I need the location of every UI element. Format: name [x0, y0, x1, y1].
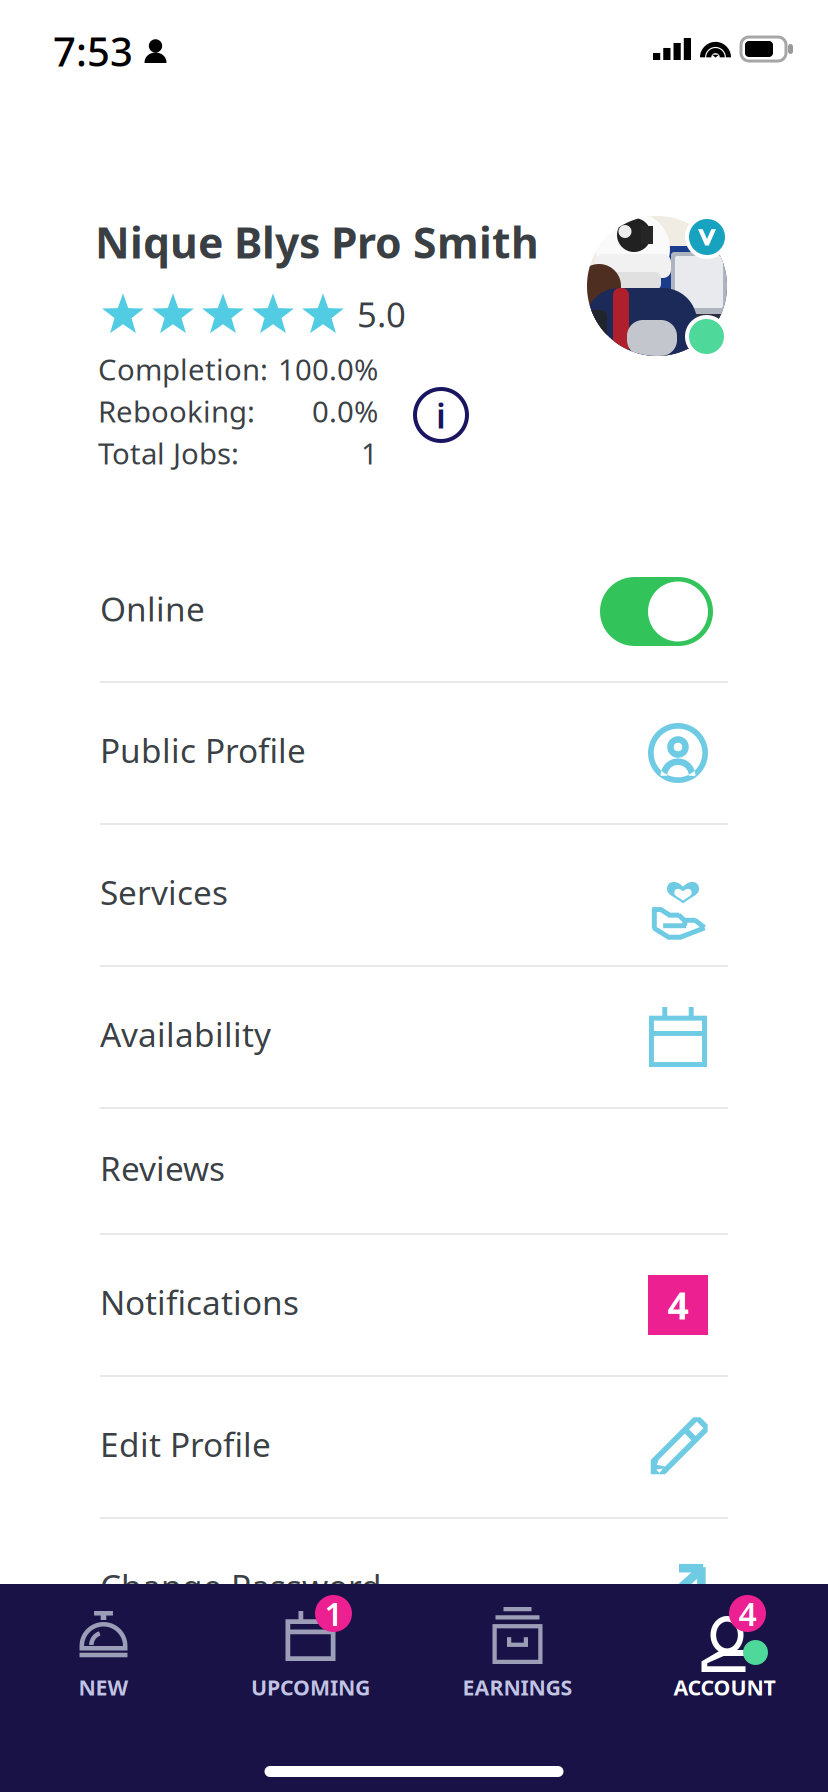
button[interactable]: NEW	[0, 1584, 207, 1714]
button[interactable]: Reviews	[100, 1109, 728, 1233]
staticText: NEW	[78, 1673, 128, 1701]
staticText: 0.0%	[312, 391, 378, 430]
button[interactable]: Public Profile	[100, 683, 728, 823]
staticText: Completion:	[98, 349, 268, 388]
staticText: EARNINGS	[462, 1673, 572, 1701]
staticText: 7:53	[53, 24, 133, 77]
staticText: 1	[361, 433, 378, 472]
button[interactable]: Online	[100, 542, 728, 681]
button[interactable]: 4	[621, 1584, 828, 1714]
staticText: UPCOMING	[251, 1673, 370, 1701]
staticText: Edit Profile	[100, 1422, 271, 1466]
button[interactable]: Notifications	[100, 1235, 728, 1375]
staticText: Online	[100, 586, 205, 631]
button[interactable]: Availability	[100, 967, 728, 1107]
staticText: 4	[738, 1592, 756, 1635]
staticText: 1	[324, 1592, 342, 1635]
staticText: Availability	[100, 1012, 271, 1056]
staticText: Notifications	[100, 1280, 299, 1324]
button[interactable]: Change Password	[100, 1519, 728, 1659]
button[interactable]: Edit Profile	[100, 1377, 728, 1517]
staticText: 4	[667, 1280, 688, 1330]
staticText: Total Jobs:	[98, 433, 239, 472]
staticText: Change Password	[100, 1564, 382, 1608]
staticText: ACCOUNT	[673, 1673, 775, 1701]
staticText: 100.0%	[278, 349, 378, 388]
button[interactable]: Stats info	[397, 371, 485, 459]
staticText: Public Profile	[100, 728, 306, 772]
button[interactable]: 1	[207, 1584, 414, 1714]
staticText: Nique Blys Pro Smith	[95, 214, 539, 270]
staticText: Reviews	[100, 1146, 225, 1190]
staticText: 5.0	[357, 291, 406, 337]
staticText: Rebooking:	[98, 391, 255, 430]
staticText: i	[436, 392, 446, 438]
staticText: Services	[100, 870, 228, 914]
button[interactable]: EARNINGS	[414, 1584, 621, 1714]
button[interactable]: Services	[100, 825, 728, 965]
